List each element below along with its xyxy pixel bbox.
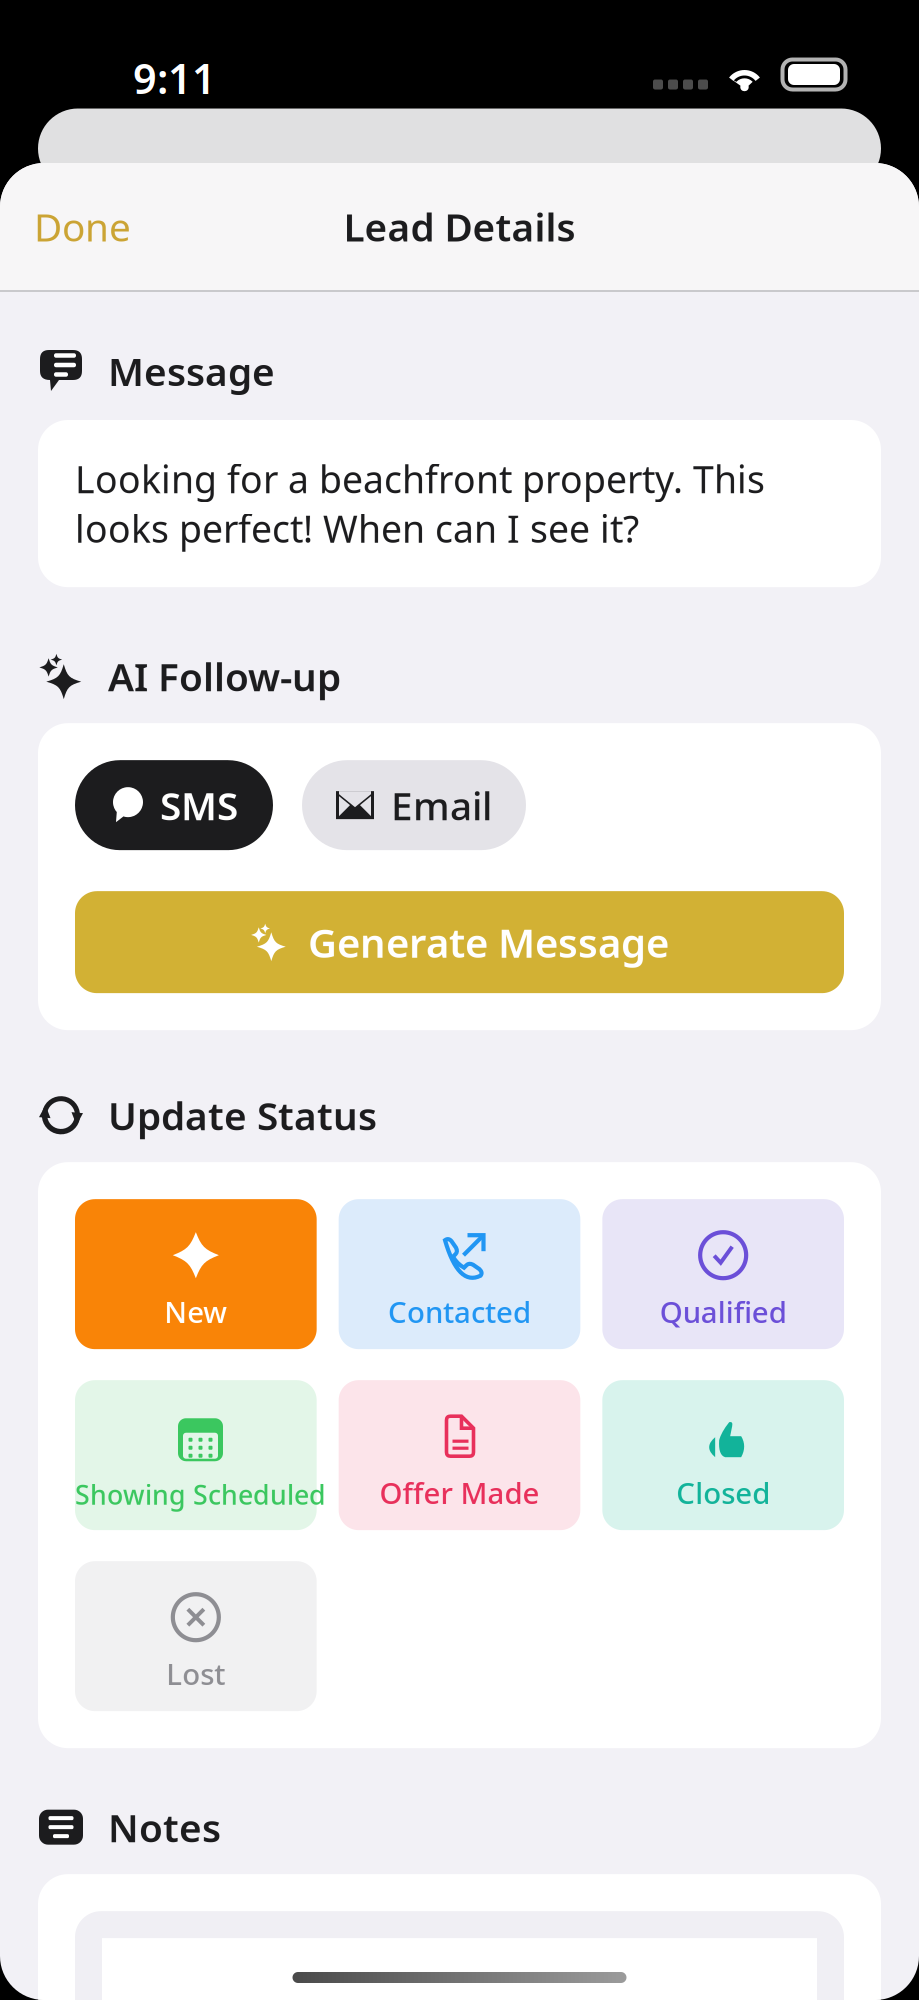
staticText: Looking for a beachfront property. This … [75,454,765,553]
staticText: Update Status [108,1089,377,1141]
button[interactable]: Qualified [602,1199,844,1349]
button[interactable]: Done [34,201,131,252]
staticText: Email [391,779,492,831]
button[interactable]: Generate Message [75,891,844,993]
staticText: Offer Made [379,1473,539,1512]
button[interactable]: New [75,1199,317,1349]
staticText: Contacted [388,1292,531,1331]
button[interactable]: SMS [75,760,273,850]
staticText: Showing Scheduled [75,1477,326,1512]
staticText: New [164,1292,227,1331]
staticText: Notes [108,1801,221,1853]
staticText: Message [108,345,275,397]
staticText: Closed [676,1473,770,1512]
staticText: Generate Message [308,916,669,969]
button[interactable]: Contacted [339,1199,580,1349]
staticText: AI Follow-up [108,650,341,702]
staticText: Lost [166,1654,225,1693]
staticText: SMS [160,779,238,831]
staticText: Qualified [660,1292,787,1331]
button[interactable]: Lost [75,1561,317,1711]
button[interactable]: Showing Scheduled [75,1380,317,1530]
staticText: Done [34,201,131,252]
button[interactable]: Email [302,760,526,850]
staticText: 9:11 [133,51,216,105]
button[interactable]: Offer Made [339,1380,580,1530]
staticText: Lead Details [343,201,575,252]
button[interactable]: Closed [602,1380,844,1530]
